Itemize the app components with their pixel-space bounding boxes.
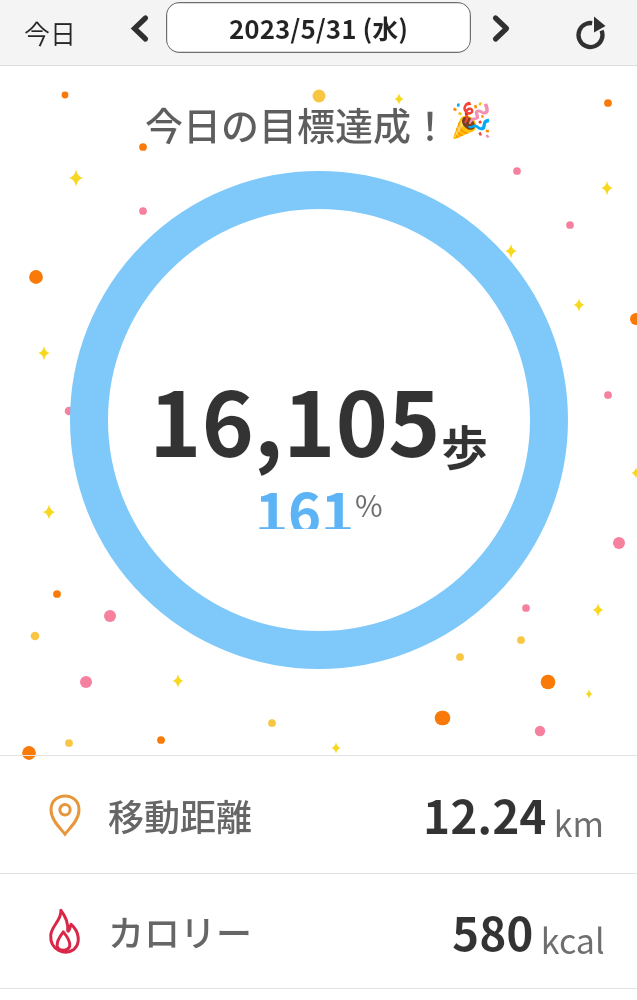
button[interactable]: Next day — [471, 0, 531, 65]
button[interactable]: 移動距離 — [0, 756, 637, 873]
staticText: 歩 — [441, 410, 488, 478]
staticText: 580 — [452, 898, 534, 965]
staticText: 16,105 — [149, 354, 441, 483]
staticText: 今日の目標達成！ — [145, 96, 450, 148]
staticText: 移動距離 — [108, 789, 253, 841]
staticText: カロリー — [108, 905, 253, 957]
button[interactable]: Refresh — [558, 0, 628, 65]
staticText: % — [355, 482, 383, 525]
button[interactable]: カロリー — [0, 874, 637, 988]
button[interactable]: Previous day — [110, 0, 170, 65]
staticText: km — [547, 798, 605, 847]
staticText: 今日 — [24, 14, 77, 52]
button[interactable]: 今日 — [8, 0, 92, 65]
button[interactable]: 2023/5/31 (水) — [166, 2, 471, 53]
staticText: 161 — [255, 469, 355, 529]
staticText: kcal — [534, 915, 605, 964]
staticText: 12.24 — [423, 781, 547, 848]
staticText: 2023/5/31 (水) — [229, 9, 409, 47]
staticText: 🎉 — [450, 100, 493, 140]
